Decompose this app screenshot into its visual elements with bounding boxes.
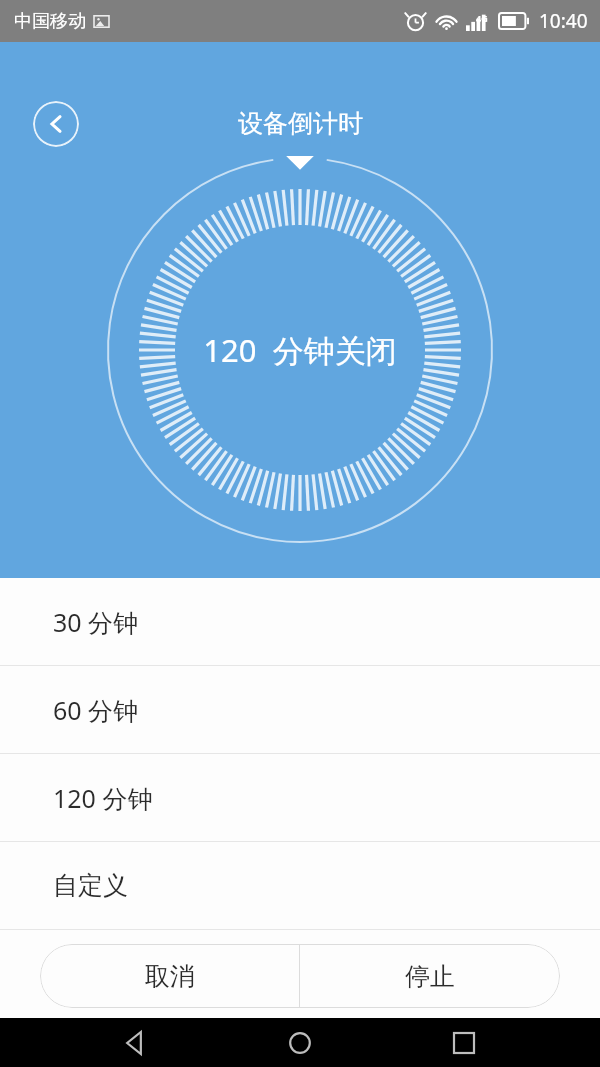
- button[interactable]: Back: [33, 101, 79, 147]
- staticText: 自定义: [53, 870, 128, 901]
- staticText: 120 分钟: [53, 781, 153, 815]
- staticText: 60 分钟: [53, 693, 139, 727]
- staticText: 120 分钟关闭: [203, 329, 397, 371]
- staticText: 4G: [476, 12, 488, 24]
- button[interactable]: 取消: [40, 944, 299, 1008]
- button[interactable]: 自定义: [0, 842, 600, 929]
- button[interactable]: Home: [272, 1018, 328, 1067]
- staticText: 取消: [145, 961, 195, 992]
- staticText: 10:40: [539, 8, 588, 34]
- button[interactable]: Back: [108, 1018, 164, 1067]
- staticText: 设备倒计时: [238, 108, 363, 139]
- button[interactable]: Recent apps: [436, 1018, 492, 1067]
- button[interactable]: 30 分钟: [0, 578, 600, 665]
- button[interactable]: 120 分钟: [0, 754, 600, 841]
- staticText: 中国移动: [14, 10, 86, 33]
- button[interactable]: 60 分钟: [0, 666, 600, 753]
- staticText: 停止: [405, 961, 455, 992]
- staticText: 30 分钟: [53, 605, 139, 639]
- button[interactable]: 停止: [300, 944, 560, 1008]
